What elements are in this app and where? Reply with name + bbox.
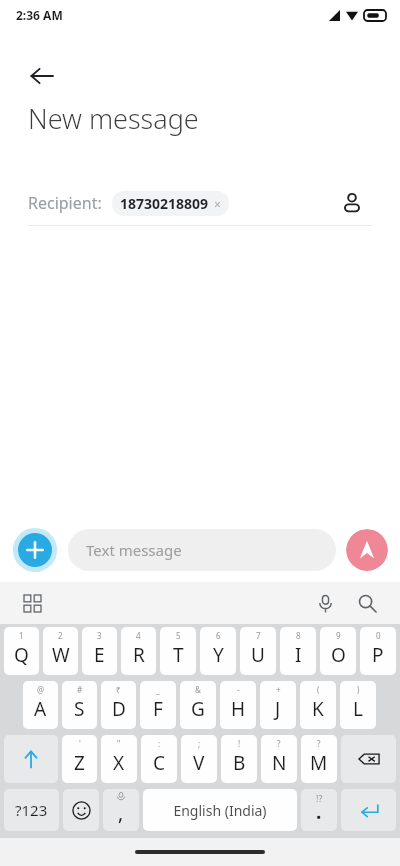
button[interactable]: 5 bbox=[160, 627, 196, 675]
staticText: ? bbox=[277, 738, 281, 749]
button[interactable]: & bbox=[180, 681, 216, 729]
button[interactable]: Emoji bbox=[63, 789, 99, 831]
staticText: . bbox=[316, 799, 322, 825]
button[interactable]: @ bbox=[23, 681, 58, 729]
staticText: & bbox=[195, 684, 201, 695]
staticText: I bbox=[295, 642, 302, 668]
button[interactable]: # bbox=[62, 681, 97, 729]
staticText: 2 bbox=[58, 630, 63, 641]
button[interactable]: 9 bbox=[320, 627, 356, 675]
staticText: T bbox=[173, 642, 184, 668]
staticText: 0 bbox=[376, 630, 381, 641]
button[interactable]: ; bbox=[181, 735, 217, 783]
staticText: 3 bbox=[97, 630, 102, 641]
staticText: 1 bbox=[19, 630, 24, 641]
staticText: " bbox=[117, 738, 121, 749]
button[interactable]: ?123 bbox=[4, 789, 59, 831]
staticText: - bbox=[237, 684, 240, 695]
button[interactable]: Send bbox=[346, 529, 388, 571]
staticText: Text message bbox=[86, 540, 182, 560]
staticText: 5 bbox=[176, 630, 181, 641]
staticText: X bbox=[113, 750, 125, 776]
button[interactable]: Enter bbox=[341, 789, 396, 831]
staticText: @ bbox=[37, 684, 45, 695]
staticText: M bbox=[310, 750, 328, 776]
staticText: ?123 bbox=[15, 800, 48, 820]
button[interactable]: 1 bbox=[4, 627, 39, 675]
staticText: ! bbox=[238, 738, 241, 749]
button[interactable]: 0 bbox=[360, 627, 396, 675]
staticText: C bbox=[153, 750, 166, 776]
staticText: 8 bbox=[296, 630, 301, 641]
button[interactable]: ' bbox=[62, 735, 97, 783]
button[interactable]: , bbox=[103, 789, 139, 831]
button[interactable]: !? bbox=[301, 789, 337, 831]
button[interactable]: + bbox=[260, 681, 296, 729]
button[interactable]: 3 bbox=[82, 627, 117, 675]
staticText: 4 bbox=[136, 630, 141, 641]
staticText: × bbox=[214, 196, 221, 212]
button[interactable]: 2 bbox=[43, 627, 78, 675]
button[interactable]: ) bbox=[340, 681, 376, 729]
button[interactable]: - bbox=[220, 681, 256, 729]
staticText: L bbox=[353, 696, 363, 722]
staticText: 18730218809 bbox=[120, 194, 209, 213]
staticText: H bbox=[231, 696, 246, 722]
staticText: G bbox=[191, 696, 205, 722]
button[interactable]: ₹ bbox=[101, 681, 136, 729]
staticText: + bbox=[276, 684, 281, 695]
button[interactable]: Pick contact bbox=[332, 183, 372, 223]
staticText: D bbox=[112, 696, 126, 722]
staticText: S bbox=[74, 696, 85, 722]
staticText: ; bbox=[198, 738, 201, 749]
staticText: ( bbox=[317, 684, 320, 695]
button[interactable]: 4 bbox=[121, 627, 156, 675]
button[interactable]: ? bbox=[301, 735, 337, 783]
staticText: 9 bbox=[336, 630, 341, 641]
staticText: Y bbox=[213, 642, 224, 668]
button[interactable]: 18730218809 bbox=[112, 191, 229, 216]
staticText: , bbox=[118, 800, 124, 826]
staticText: ) bbox=[357, 684, 360, 695]
staticText: _ bbox=[156, 684, 160, 695]
button[interactable]: Back bbox=[14, 48, 70, 104]
button[interactable]: 7 bbox=[240, 627, 276, 675]
button[interactable]: English (India) bbox=[143, 789, 297, 831]
staticText: W bbox=[52, 642, 70, 668]
staticText: K bbox=[312, 696, 324, 722]
staticText: P bbox=[372, 642, 384, 668]
button[interactable]: Backspace bbox=[341, 735, 396, 783]
button[interactable]: ( bbox=[300, 681, 336, 729]
staticText: E bbox=[94, 642, 105, 668]
staticText: F bbox=[153, 696, 163, 722]
staticText: U bbox=[251, 642, 265, 668]
staticText: 2:36 AM bbox=[16, 7, 63, 23]
staticText: R bbox=[133, 642, 145, 668]
staticText: ' bbox=[79, 738, 81, 749]
staticText: 7 bbox=[256, 630, 261, 641]
staticText: N bbox=[272, 750, 287, 776]
staticText: New message bbox=[28, 100, 199, 137]
button[interactable]: 8 bbox=[280, 627, 316, 675]
button[interactable]: Keyboard menu bbox=[16, 587, 48, 619]
button[interactable]: Search bbox=[350, 586, 384, 620]
button[interactable]: Voice input bbox=[308, 586, 342, 620]
button[interactable]: ? bbox=[261, 735, 297, 783]
button[interactable]: Add attachment bbox=[12, 527, 58, 573]
staticText: J bbox=[275, 696, 281, 722]
button[interactable]: 6 bbox=[200, 627, 236, 675]
staticText: Recipient: bbox=[28, 192, 102, 214]
staticText: : bbox=[158, 738, 161, 749]
staticText: B bbox=[233, 750, 246, 776]
button[interactable]: Text message bbox=[68, 529, 336, 571]
button[interactable]: " bbox=[101, 735, 137, 783]
staticText: # bbox=[77, 684, 83, 695]
staticText: !? bbox=[316, 792, 323, 804]
button[interactable]: Shift bbox=[4, 735, 58, 783]
button[interactable]: : bbox=[141, 735, 177, 783]
staticText: Z bbox=[74, 750, 85, 776]
staticText: ? bbox=[317, 738, 321, 749]
button[interactable]: _ bbox=[140, 681, 176, 729]
staticText: V bbox=[193, 750, 205, 776]
button[interactable]: ! bbox=[221, 735, 257, 783]
